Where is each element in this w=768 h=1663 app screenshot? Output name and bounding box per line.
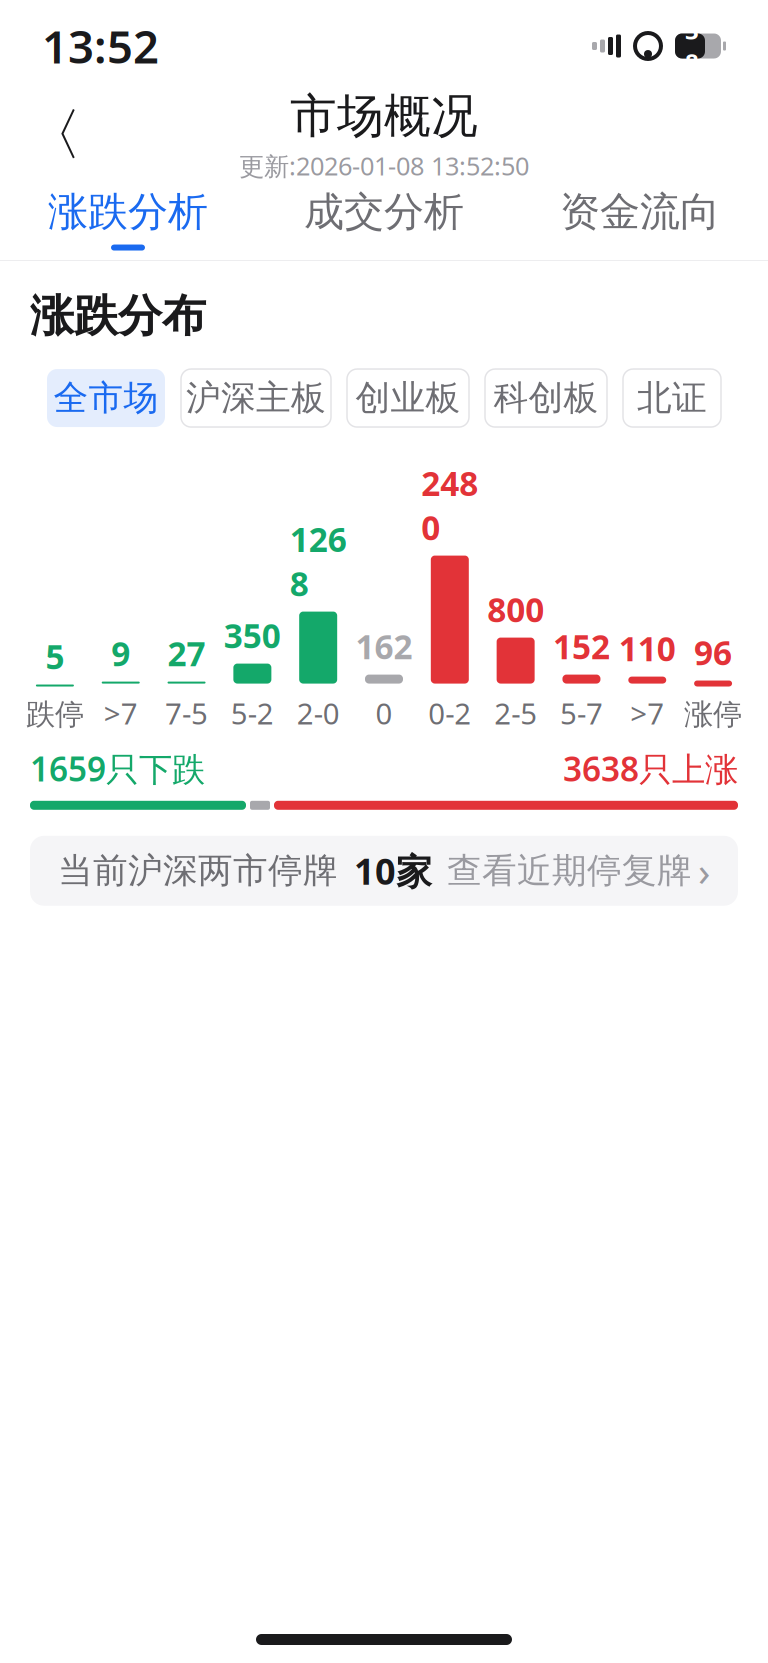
staticText: 沪深主板 [186, 377, 326, 419]
button[interactable]: 北证 [623, 369, 721, 427]
staticText: 110 [619, 626, 676, 671]
button[interactable]: 涨跌分析 [0, 178, 256, 260]
button[interactable]: 返回 [18, 99, 90, 171]
staticText: 全市场 [53, 377, 158, 419]
button[interactable]: 全市场 [47, 369, 165, 427]
button[interactable]: 资金流向 [512, 178, 768, 260]
staticText: 涨跌分析 [48, 187, 208, 236]
staticText: >7 [104, 694, 138, 733]
staticText: 350 [224, 613, 281, 658]
staticText: 152 [553, 624, 610, 669]
staticText: 3638只上涨 [563, 746, 738, 791]
staticText: 1659只下跌 [30, 746, 205, 791]
button[interactable]: 创业板 [347, 369, 469, 427]
staticText: 7-5 [165, 694, 208, 733]
staticText: 5-7 [560, 694, 603, 733]
staticText: 27 [167, 631, 205, 676]
staticText: 科创板 [493, 377, 598, 419]
staticText: 涨跌分布 [30, 289, 206, 343]
staticText: 2480 [421, 461, 478, 549]
staticText: 10家 [354, 847, 432, 895]
staticText: 查看近期停复牌 [447, 849, 692, 892]
staticText: 2-5 [494, 694, 537, 733]
staticText: >7 [630, 694, 664, 733]
staticText: 资金流向 [560, 187, 720, 236]
staticText: 〈 [26, 101, 82, 169]
staticText: 800 [487, 587, 544, 632]
staticText: 更新:2026-01-08 13:52:50 [239, 149, 529, 182]
button[interactable]: 成交分析 [256, 178, 512, 260]
staticText: 当前沪深两市停牌 [58, 849, 338, 892]
staticText: 1268 [290, 517, 347, 605]
staticText: 5 [45, 634, 64, 678]
button[interactable]: 当前沪深两市停牌 [30, 836, 738, 906]
staticText: 0-2 [428, 694, 471, 733]
staticText: 成交分析 [304, 187, 464, 236]
staticText: 涨停 [684, 696, 742, 732]
staticText: 创业板 [355, 377, 460, 419]
staticText: › [698, 844, 710, 897]
staticText: 0 [375, 694, 392, 733]
staticText: 跌停 [26, 696, 84, 732]
staticText: 38 [685, 14, 699, 78]
staticText: 市场概况 [290, 87, 478, 145]
button[interactable]: 科创板 [485, 369, 607, 427]
staticText: 5-2 [231, 694, 274, 733]
staticText: 9 [111, 631, 130, 676]
staticText: 北证 [637, 377, 707, 419]
staticText: 162 [355, 624, 412, 669]
staticText: 2-0 [297, 694, 340, 733]
staticText: 13:52 [42, 16, 159, 76]
staticText: 96 [694, 630, 732, 674]
button[interactable]: 沪深主板 [181, 369, 331, 427]
